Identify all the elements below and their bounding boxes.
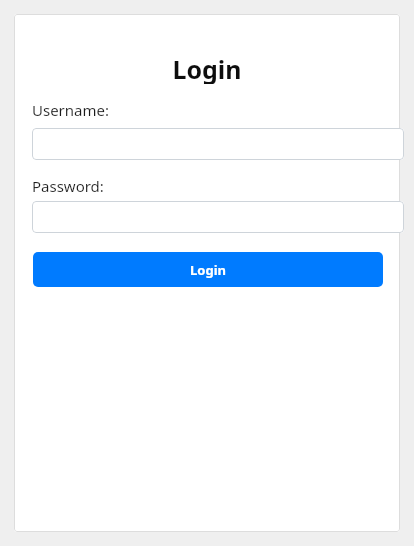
staticText: Username:: [32, 100, 109, 119]
staticText: Login: [190, 261, 226, 279]
staticText: Login: [172, 52, 242, 84]
staticText: Password:: [32, 176, 104, 195]
button[interactable]: Username input field: [32, 128, 404, 160]
button[interactable]: Login: [33, 252, 383, 287]
button[interactable]: Password input field: [32, 201, 404, 233]
